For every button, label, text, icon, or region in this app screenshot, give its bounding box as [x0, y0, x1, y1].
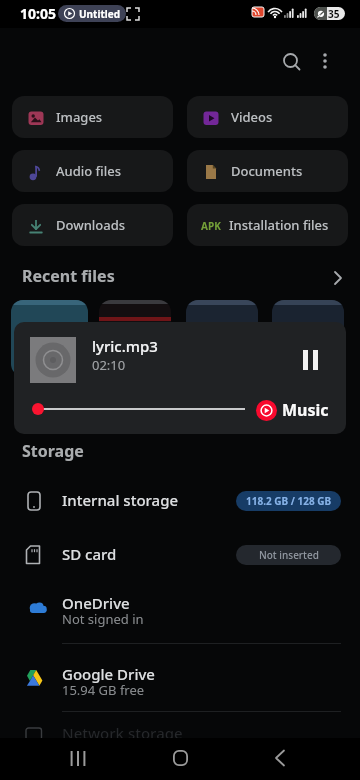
button[interactable]: APK — [187, 204, 348, 246]
button[interactable] — [278, 48, 306, 76]
staticText: Documents — [231, 162, 303, 180]
staticText: Internal storage — [62, 490, 179, 510]
staticText: Downloads — [56, 216, 126, 234]
staticText: Recent files — [22, 265, 115, 287]
staticText: Not inserted — [259, 548, 319, 562]
button[interactable] — [0, 584, 360, 643]
staticText: Untitled — [79, 7, 120, 21]
staticText: Videos — [231, 108, 273, 126]
button[interactable]: Documents — [187, 150, 348, 192]
staticText: SD card — [62, 544, 117, 564]
button[interactable] — [290, 339, 332, 381]
button[interactable]: Audio files — [12, 150, 173, 192]
staticText: 118.2 GB / 128 GB — [246, 494, 332, 508]
staticText: Images — [56, 108, 103, 126]
staticText: Google Drive — [62, 664, 155, 684]
button[interactable] — [326, 266, 350, 290]
button[interactable] — [160, 738, 200, 778]
staticText: 02:10 — [92, 356, 126, 374]
staticText: Storage — [22, 440, 84, 462]
staticText: Music — [282, 399, 329, 421]
button[interactable]: Images — [12, 96, 173, 138]
staticText: 15.94 GB free — [62, 681, 145, 699]
staticText: Installation files — [229, 216, 329, 234]
button[interactable]: lyric.mp3 — [14, 322, 346, 434]
button[interactable] — [313, 48, 337, 72]
button[interactable] — [0, 478, 360, 530]
button[interactable]: Videos — [187, 96, 348, 138]
button[interactable] — [260, 738, 300, 778]
button[interactable]: Untitled — [58, 5, 126, 22]
staticText: Audio files — [56, 162, 121, 180]
staticText: APK — [201, 219, 221, 233]
staticText: 35 — [328, 7, 340, 20]
button[interactable] — [0, 530, 360, 582]
button[interactable] — [0, 712, 360, 738]
staticText: 10:05 — [20, 4, 56, 23]
staticText: lyric.mp3 — [92, 336, 158, 356]
staticText: Network storage — [62, 723, 183, 743]
button[interactable] — [58, 738, 98, 778]
staticText: OneDrive — [62, 593, 130, 613]
button[interactable]: Music — [256, 396, 329, 424]
staticText: Not signed in — [62, 610, 144, 628]
button[interactable]: Downloads — [12, 204, 173, 246]
button[interactable] — [0, 644, 360, 712]
